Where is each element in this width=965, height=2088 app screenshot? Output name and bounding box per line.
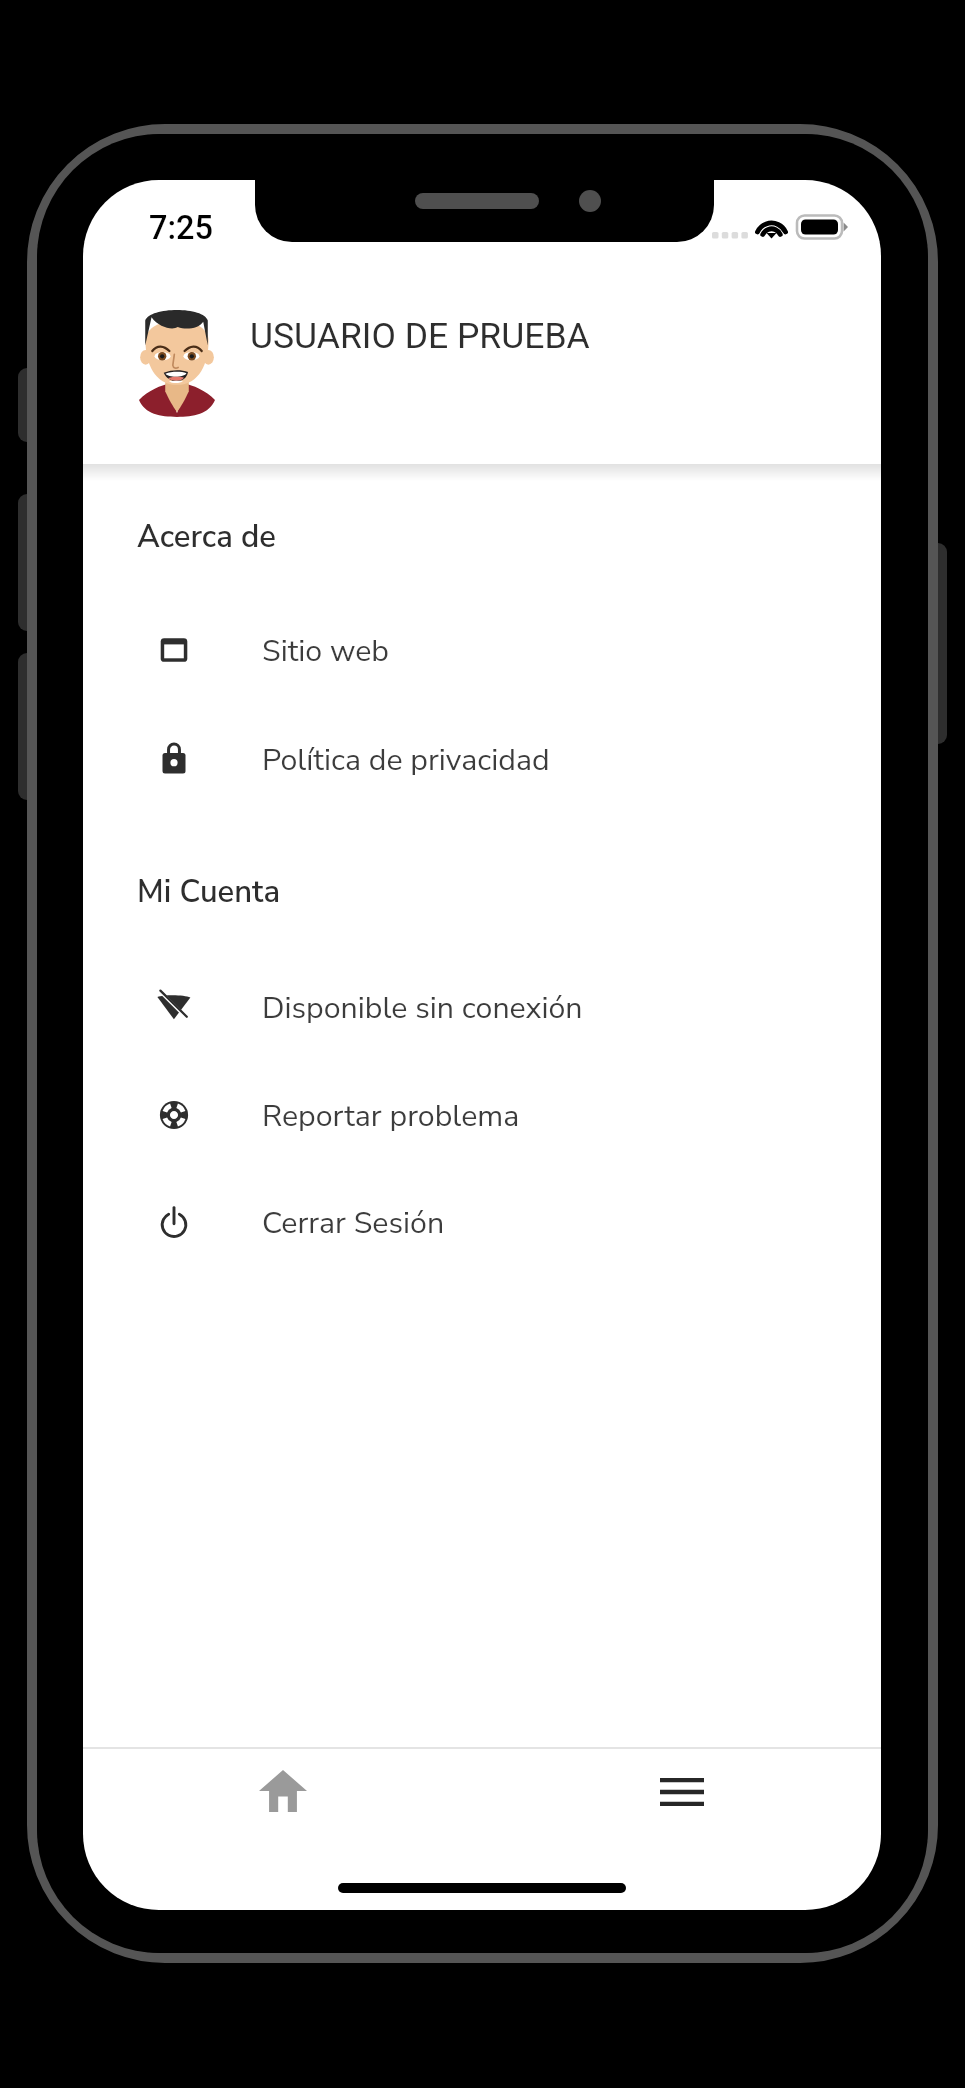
button[interactable]: Cerrar Sesión — [83, 1178, 881, 1266]
staticText: Política de privacidad — [262, 739, 550, 780]
button[interactable]: Política de privacidad — [83, 715, 881, 803]
button[interactable]: USUARIO DE PRUEBA — [83, 245, 881, 464]
staticText: Cerrar Sesión — [262, 1202, 445, 1243]
button[interactable]: Reportar problema — [83, 1071, 881, 1159]
staticText: Acerca de — [137, 516, 276, 558]
staticText: Disponible sin conexión — [262, 987, 583, 1028]
staticText: Mi Cuenta — [137, 871, 281, 913]
button[interactable]: Home — [223, 1748, 343, 1834]
button[interactable]: Menu — [622, 1749, 742, 1835]
staticText: 7:25 — [149, 209, 213, 247]
staticText: Sitio web — [262, 630, 389, 671]
button[interactable]: Sitio web — [83, 606, 881, 694]
button[interactable]: Disponible sin conexión — [83, 963, 881, 1051]
staticText: USUARIO DE PRUEBA — [250, 315, 590, 357]
staticText: Reportar problema — [262, 1095, 520, 1136]
